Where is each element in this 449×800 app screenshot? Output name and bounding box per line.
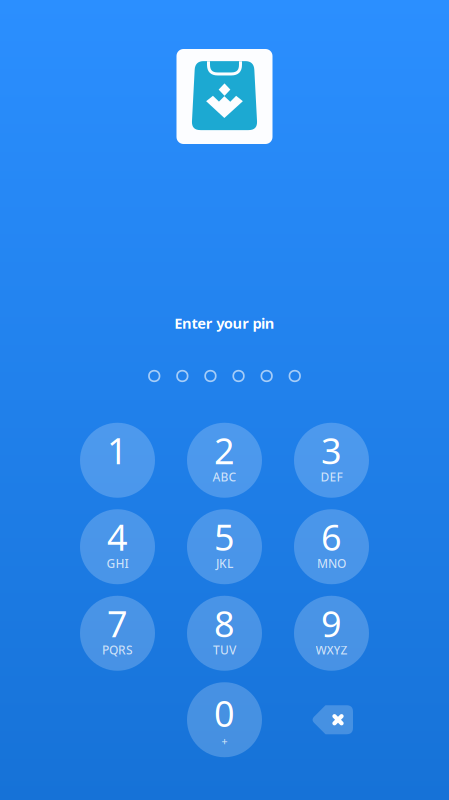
button[interactable]: 7 [64, 590, 171, 676]
staticText: Enter your pin [174, 313, 275, 333]
staticText: MNO [317, 555, 346, 571]
staticText: DEF [320, 469, 342, 485]
staticText: TUV [213, 642, 236, 658]
staticText: 8 [214, 599, 235, 647]
staticText: JKL [216, 555, 233, 571]
staticText: 2 [214, 426, 235, 474]
staticText: 5 [214, 513, 235, 561]
staticText: 7 [107, 599, 128, 647]
button[interactable]: 5 [171, 503, 278, 590]
button[interactable]: 1 [64, 417, 171, 503]
button[interactable]: Delete [278, 676, 385, 763]
button[interactable]: 2 [171, 417, 278, 503]
staticText: PQRS [102, 642, 133, 658]
staticText: ABC [212, 469, 236, 485]
button[interactable]: 9 [278, 590, 385, 676]
button[interactable]: 6 [278, 503, 385, 590]
button[interactable]: 0 [171, 676, 278, 763]
button[interactable]: 8 [171, 590, 278, 676]
staticText: + [221, 734, 227, 748]
staticText: 6 [321, 513, 342, 561]
staticText: GHI [106, 555, 128, 571]
button[interactable]: 4 [64, 503, 171, 590]
button[interactable]: 3 [278, 417, 385, 503]
staticText: 9 [321, 599, 342, 647]
staticText: 3 [321, 426, 342, 474]
staticText: 4 [107, 513, 128, 561]
staticText: 1 [107, 426, 128, 474]
staticText: WXYZ [315, 642, 347, 658]
staticText: 0 [214, 689, 235, 737]
